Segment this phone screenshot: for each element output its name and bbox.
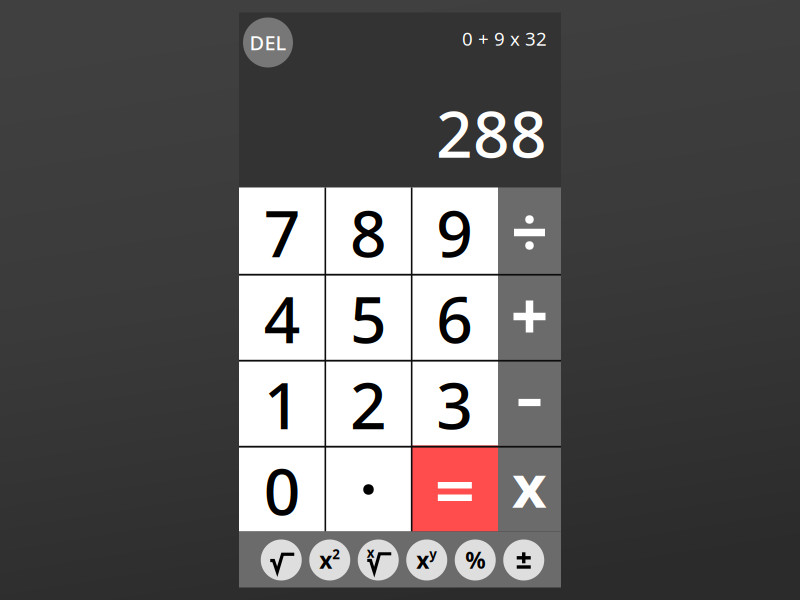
button[interactable]: 5 bbox=[325, 273, 412, 359]
staticText: x bbox=[367, 544, 375, 561]
staticText: 2 bbox=[332, 545, 340, 563]
staticText: DEL bbox=[249, 29, 286, 56]
staticText: 0 bbox=[264, 448, 301, 533]
button[interactable]: 2 bbox=[325, 359, 412, 445]
staticText: 6 bbox=[436, 276, 473, 361]
staticText: 7 bbox=[264, 190, 301, 275]
button[interactable]: Percent bbox=[455, 539, 496, 580]
button[interactable]: Divide bbox=[498, 187, 561, 273]
staticText: 2 bbox=[350, 362, 387, 447]
button[interactable]: Decimal point bbox=[325, 445, 412, 531]
button[interactable]: Multiply bbox=[498, 445, 561, 531]
staticText: % bbox=[465, 545, 485, 575]
button[interactable]: 7 bbox=[239, 187, 325, 273]
button[interactable]: 3 bbox=[412, 359, 498, 445]
staticText: 8 bbox=[350, 190, 387, 275]
button[interactable]: 1 bbox=[239, 359, 325, 445]
button[interactable]: Equals bbox=[412, 445, 498, 531]
staticText: 0 + 9 x 32 bbox=[462, 26, 547, 51]
button[interactable]: Nth root bbox=[358, 539, 399, 580]
button[interactable]: 9 bbox=[412, 187, 498, 273]
button[interactable]: Square root bbox=[261, 539, 302, 580]
button[interactable]: 8 bbox=[325, 187, 412, 273]
button[interactable]: Squared bbox=[309, 539, 350, 580]
button[interactable]: 4 bbox=[239, 273, 325, 359]
button[interactable]: DEL bbox=[243, 17, 293, 67]
button[interactable]: 0 bbox=[239, 445, 325, 531]
staticText: x bbox=[319, 545, 332, 575]
button[interactable]: 6 bbox=[412, 273, 498, 359]
button[interactable]: Subtract bbox=[498, 359, 561, 445]
staticText: 4 bbox=[264, 276, 301, 361]
button[interactable]: Plus or minus bbox=[503, 539, 544, 580]
staticText: y bbox=[429, 545, 437, 563]
staticText: x bbox=[416, 545, 429, 575]
staticText: 1 bbox=[264, 362, 301, 447]
staticText: 3 bbox=[436, 362, 473, 447]
staticText: x bbox=[512, 445, 547, 524]
staticText: 288 bbox=[436, 90, 547, 175]
button[interactable]: Add bbox=[498, 273, 561, 359]
staticText: 9 bbox=[436, 190, 473, 275]
staticText: 5 bbox=[350, 276, 387, 361]
button[interactable]: Power bbox=[406, 539, 447, 580]
